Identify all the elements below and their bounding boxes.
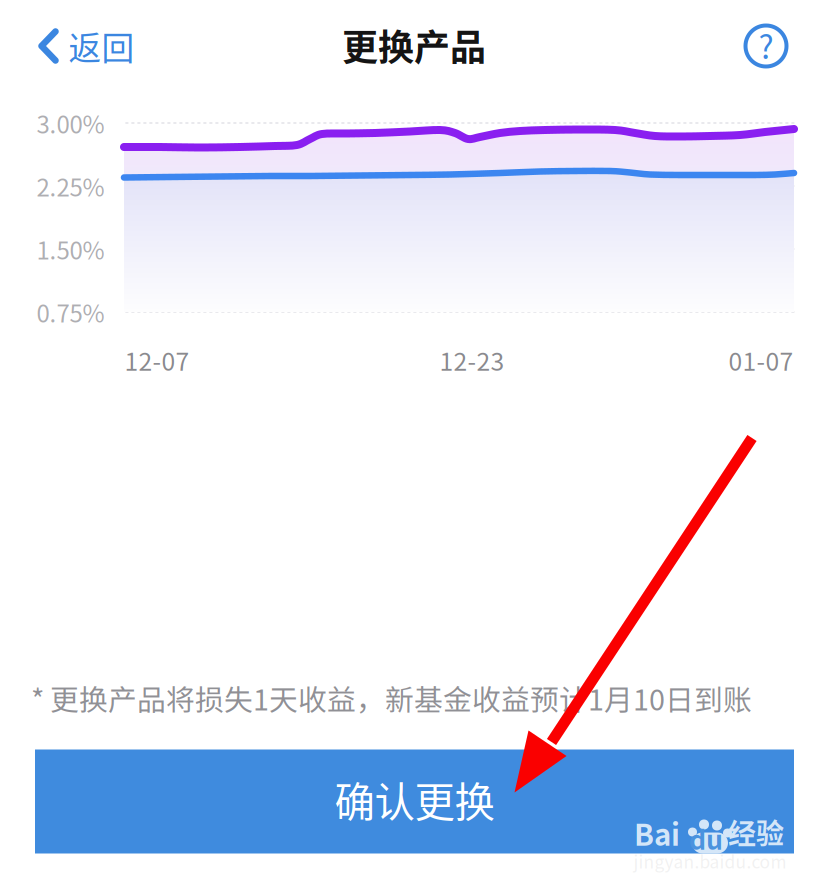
staticText: 0.75% [36,295,104,329]
staticText: 确认更换 [334,770,494,829]
staticText: ? [758,22,773,68]
staticText: 2.25% [36,169,104,203]
staticText: 1.50% [36,232,104,266]
staticText: 更换产品 [342,19,486,71]
staticText: 3.00% [36,106,104,140]
staticText: 返回 [68,22,134,70]
staticText: * 更换产品将损失1天收益，新基金收益预计1月10日到账 [31,677,752,719]
staticText: 经验 [728,812,784,852]
staticText: 01-07 [728,342,793,378]
button[interactable]: 确认更换 [35,749,794,853]
button[interactable]: Help [733,13,799,79]
staticText: 12-07 [124,342,189,378]
staticText: Bai [634,812,680,854]
staticText: 12-23 [439,342,504,378]
button[interactable]: 返回 [25,14,146,78]
staticText: du [689,819,723,857]
staticText: jingyan.baidu.com [633,848,786,874]
